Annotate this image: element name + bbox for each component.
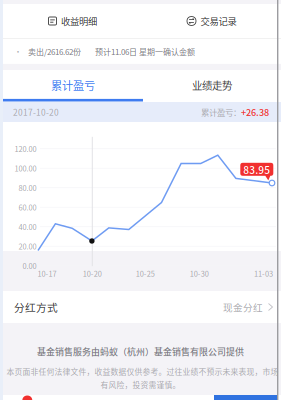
staticText: 分红方式 — [14, 299, 58, 315]
button[interactable]: 收益明细 — [3, 4, 142, 38]
staticText: 本页面非任何法律文件，收益数据仅供参考。过往业绩不预示未来表现，市场 — [6, 366, 278, 377]
staticText: 20.00 — [18, 241, 36, 252]
staticText: 业绩走势 — [192, 77, 232, 93]
button[interactable]: 分红方式 — [14, 291, 273, 323]
staticText: 交易记录 — [200, 14, 236, 28]
staticText: 有风险，投资需谨慎。 — [100, 379, 180, 390]
button[interactable]: 业绩走势 — [143, 70, 281, 100]
staticText: · — [14, 46, 22, 57]
staticText: 累计盈亏： — [201, 106, 241, 118]
staticText: 60.00 — [18, 202, 36, 213]
staticText: 11-03 — [254, 268, 273, 279]
staticText: 基金销售服务由蚂蚁（杭州）基金销售有限公司提供 — [37, 345, 244, 358]
staticText: 100.00 — [14, 163, 36, 174]
staticText: 10-25 — [136, 268, 155, 279]
staticText: 现金分红 — [223, 300, 263, 314]
staticText: 收益明细 — [61, 14, 97, 28]
staticText: +26.38 — [241, 105, 269, 118]
button[interactable]: 累计盈亏 — [3, 70, 143, 100]
staticText: 80.00 — [18, 182, 36, 193]
staticText: 累计盈亏 — [51, 77, 95, 93]
staticText: 10-17 — [37, 268, 56, 279]
staticText: 卖出/2616.62份 — [28, 46, 81, 57]
staticText: 10-30 — [190, 268, 209, 279]
staticText: 预计11.06日 星期一确认金额 — [95, 46, 195, 57]
button[interactable]: 交易记录 — [142, 4, 281, 38]
staticText: 2017-10-20 — [13, 106, 59, 118]
staticText: 10-20 — [83, 268, 102, 279]
staticText: 120.00 — [14, 143, 36, 154]
staticText: 83.95 — [243, 162, 270, 177]
staticText: 0.00 — [22, 260, 36, 271]
staticText: 40.00 — [18, 221, 36, 232]
